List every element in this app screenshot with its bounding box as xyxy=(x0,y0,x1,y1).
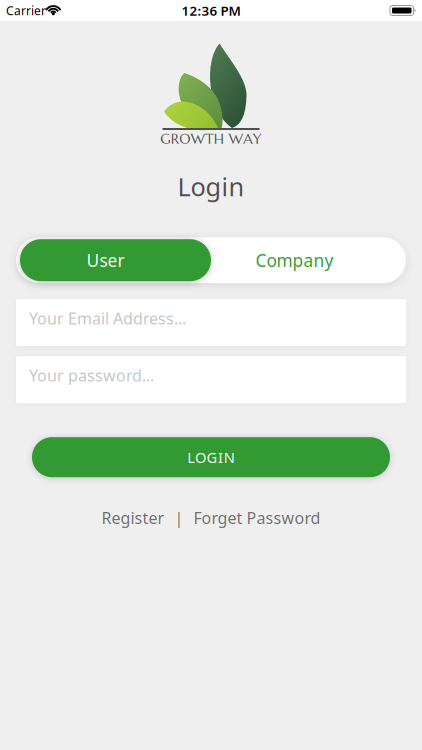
staticText: GROWTH WAY xyxy=(160,130,262,148)
button[interactable]: Register xyxy=(101,507,164,528)
button[interactable]: User xyxy=(20,239,211,281)
staticText: Register xyxy=(101,507,164,528)
button[interactable]: LOGIN xyxy=(32,437,390,477)
button[interactable]: Company xyxy=(211,239,406,281)
staticText: 12:36 PM xyxy=(181,2,240,19)
staticText: Your password... xyxy=(29,365,154,386)
staticText: Forget Password xyxy=(193,507,320,528)
staticText: User xyxy=(86,249,124,272)
staticText: | xyxy=(174,507,183,528)
staticText: Your Email Address... xyxy=(29,308,186,329)
staticText: Login xyxy=(177,170,244,203)
staticText: LOGIN xyxy=(187,447,235,467)
button[interactable]: Forget Password xyxy=(193,507,320,528)
button[interactable]: Your password... xyxy=(16,356,406,403)
button[interactable]: Your Email Address... xyxy=(16,299,406,346)
staticText: Company xyxy=(255,249,333,272)
staticText: Carrier xyxy=(6,2,46,18)
